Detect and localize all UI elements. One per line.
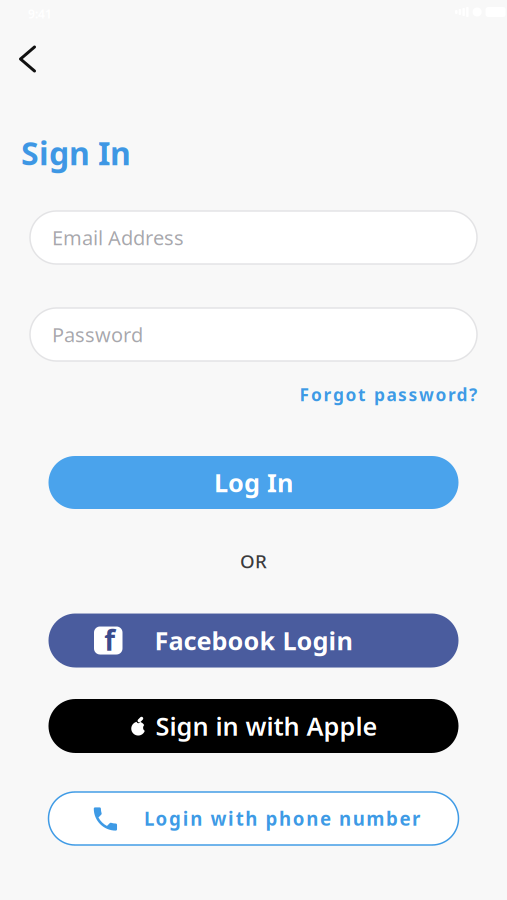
staticText: Forgot password? bbox=[299, 383, 477, 406]
staticText: OR bbox=[240, 548, 267, 573]
button[interactable]: Forgot password? bbox=[299, 383, 477, 406]
staticText: Email Address bbox=[52, 224, 184, 251]
staticText: f bbox=[104, 621, 115, 659]
button[interactable]: Facebook Login bbox=[48, 613, 458, 667]
button[interactable]: Back bbox=[5, 37, 49, 81]
staticText: Login with phone number bbox=[144, 806, 420, 831]
button[interactable]: Login with phone number bbox=[48, 792, 458, 845]
staticText: Log In bbox=[214, 466, 293, 499]
staticText: Sign In bbox=[21, 131, 131, 174]
button[interactable]: Log In bbox=[48, 456, 458, 509]
staticText: Facebook Login bbox=[154, 624, 352, 657]
staticText: Sign in with Apple bbox=[155, 709, 377, 743]
button[interactable]: Sign in with Apple bbox=[48, 699, 458, 753]
staticText: Password bbox=[52, 321, 143, 348]
